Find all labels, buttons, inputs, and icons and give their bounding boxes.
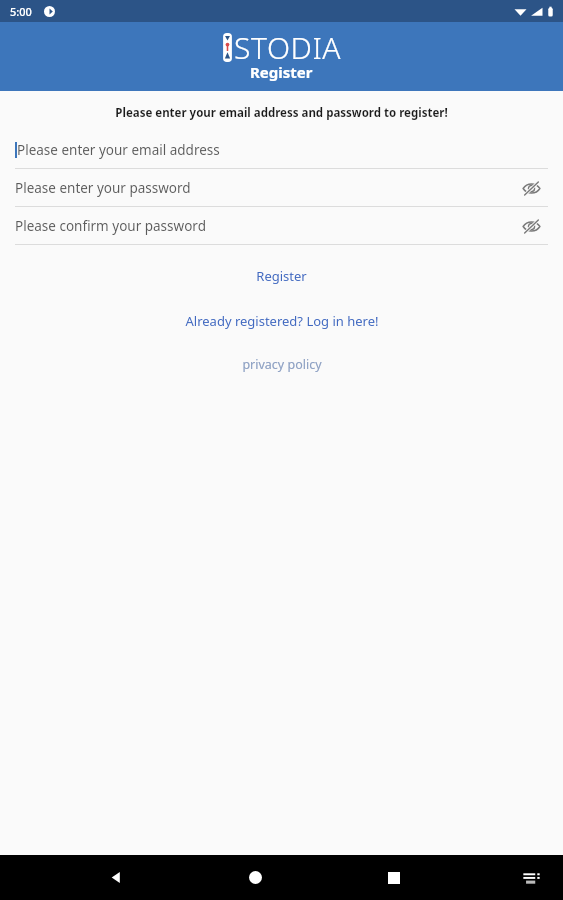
staticText: STODIA: [234, 27, 342, 68]
button[interactable]: Already registered? Log in here!: [0, 310, 563, 332]
button[interactable]: Please enter your email address: [0, 131, 563, 169]
staticText: 5:00: [10, 4, 32, 19]
button[interactable]: Register: [0, 265, 563, 287]
button[interactable]: Please confirm your password: [0, 207, 563, 245]
staticText: Please enter your password: [15, 179, 191, 197]
button[interactable]: Home: [231, 855, 279, 900]
staticText: Register: [256, 267, 307, 285]
staticText: Register: [250, 62, 313, 82]
staticText: privacy policy: [242, 356, 322, 373]
staticText: Please enter your email address and pass…: [0, 105, 563, 121]
button[interactable]: privacy policy: [0, 354, 563, 375]
staticText: Please enter your email address: [17, 141, 220, 159]
button[interactable]: Please enter your password: [0, 169, 563, 207]
staticText: Please confirm your password: [15, 217, 206, 235]
button[interactable]: Show password: [514, 209, 548, 243]
button[interactable]: Back: [92, 855, 140, 900]
staticText: Already registered? Log in here!: [185, 312, 379, 330]
button[interactable]: Show password: [514, 171, 548, 205]
button[interactable]: Switch input method: [509, 856, 553, 900]
button[interactable]: Recent apps: [370, 855, 418, 900]
